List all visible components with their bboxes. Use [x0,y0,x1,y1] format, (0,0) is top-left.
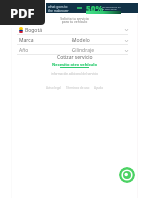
staticText: PDF [10,4,35,22]
button[interactable]: Cotizar servicio [0,54,149,60]
button[interactable]: Año [17,47,75,55]
button[interactable]: Términos de uso [66,86,90,90]
button[interactable]: Modelo [70,37,128,45]
staticText: información adicional del servicio [51,72,99,76]
button[interactable]: Ayuda [94,86,103,90]
staticText: Año [19,47,29,54]
staticText: Cilindraje [72,47,95,54]
staticText: Necesito otro vehículo [52,62,97,67]
staticText: Cotizar servicio [57,54,93,60]
button[interactable]: Cilindraje [70,47,128,55]
button[interactable]: what goes to the makeover [46,3,138,13]
button[interactable]: WhatsApp [119,167,135,183]
button[interactable]: Necesito otro vehículo [0,62,149,68]
staticText: Marca [19,37,34,44]
staticText: 50% [86,3,103,13]
staticText: what goes to the makeover [48,5,69,13]
staticText: Bogotá [25,27,42,34]
button[interactable]: Bogotá [19,26,128,34]
staticText: Solicita tu servicio para tu vehículo [60,16,89,24]
staticText: de descuento en tu plan anual [102,5,121,11]
button[interactable]: Marca [17,37,75,45]
staticText: Modelo [72,37,90,44]
button[interactable]: PDF [0,0,45,25]
button[interactable]: Aviso legal [46,86,62,90]
